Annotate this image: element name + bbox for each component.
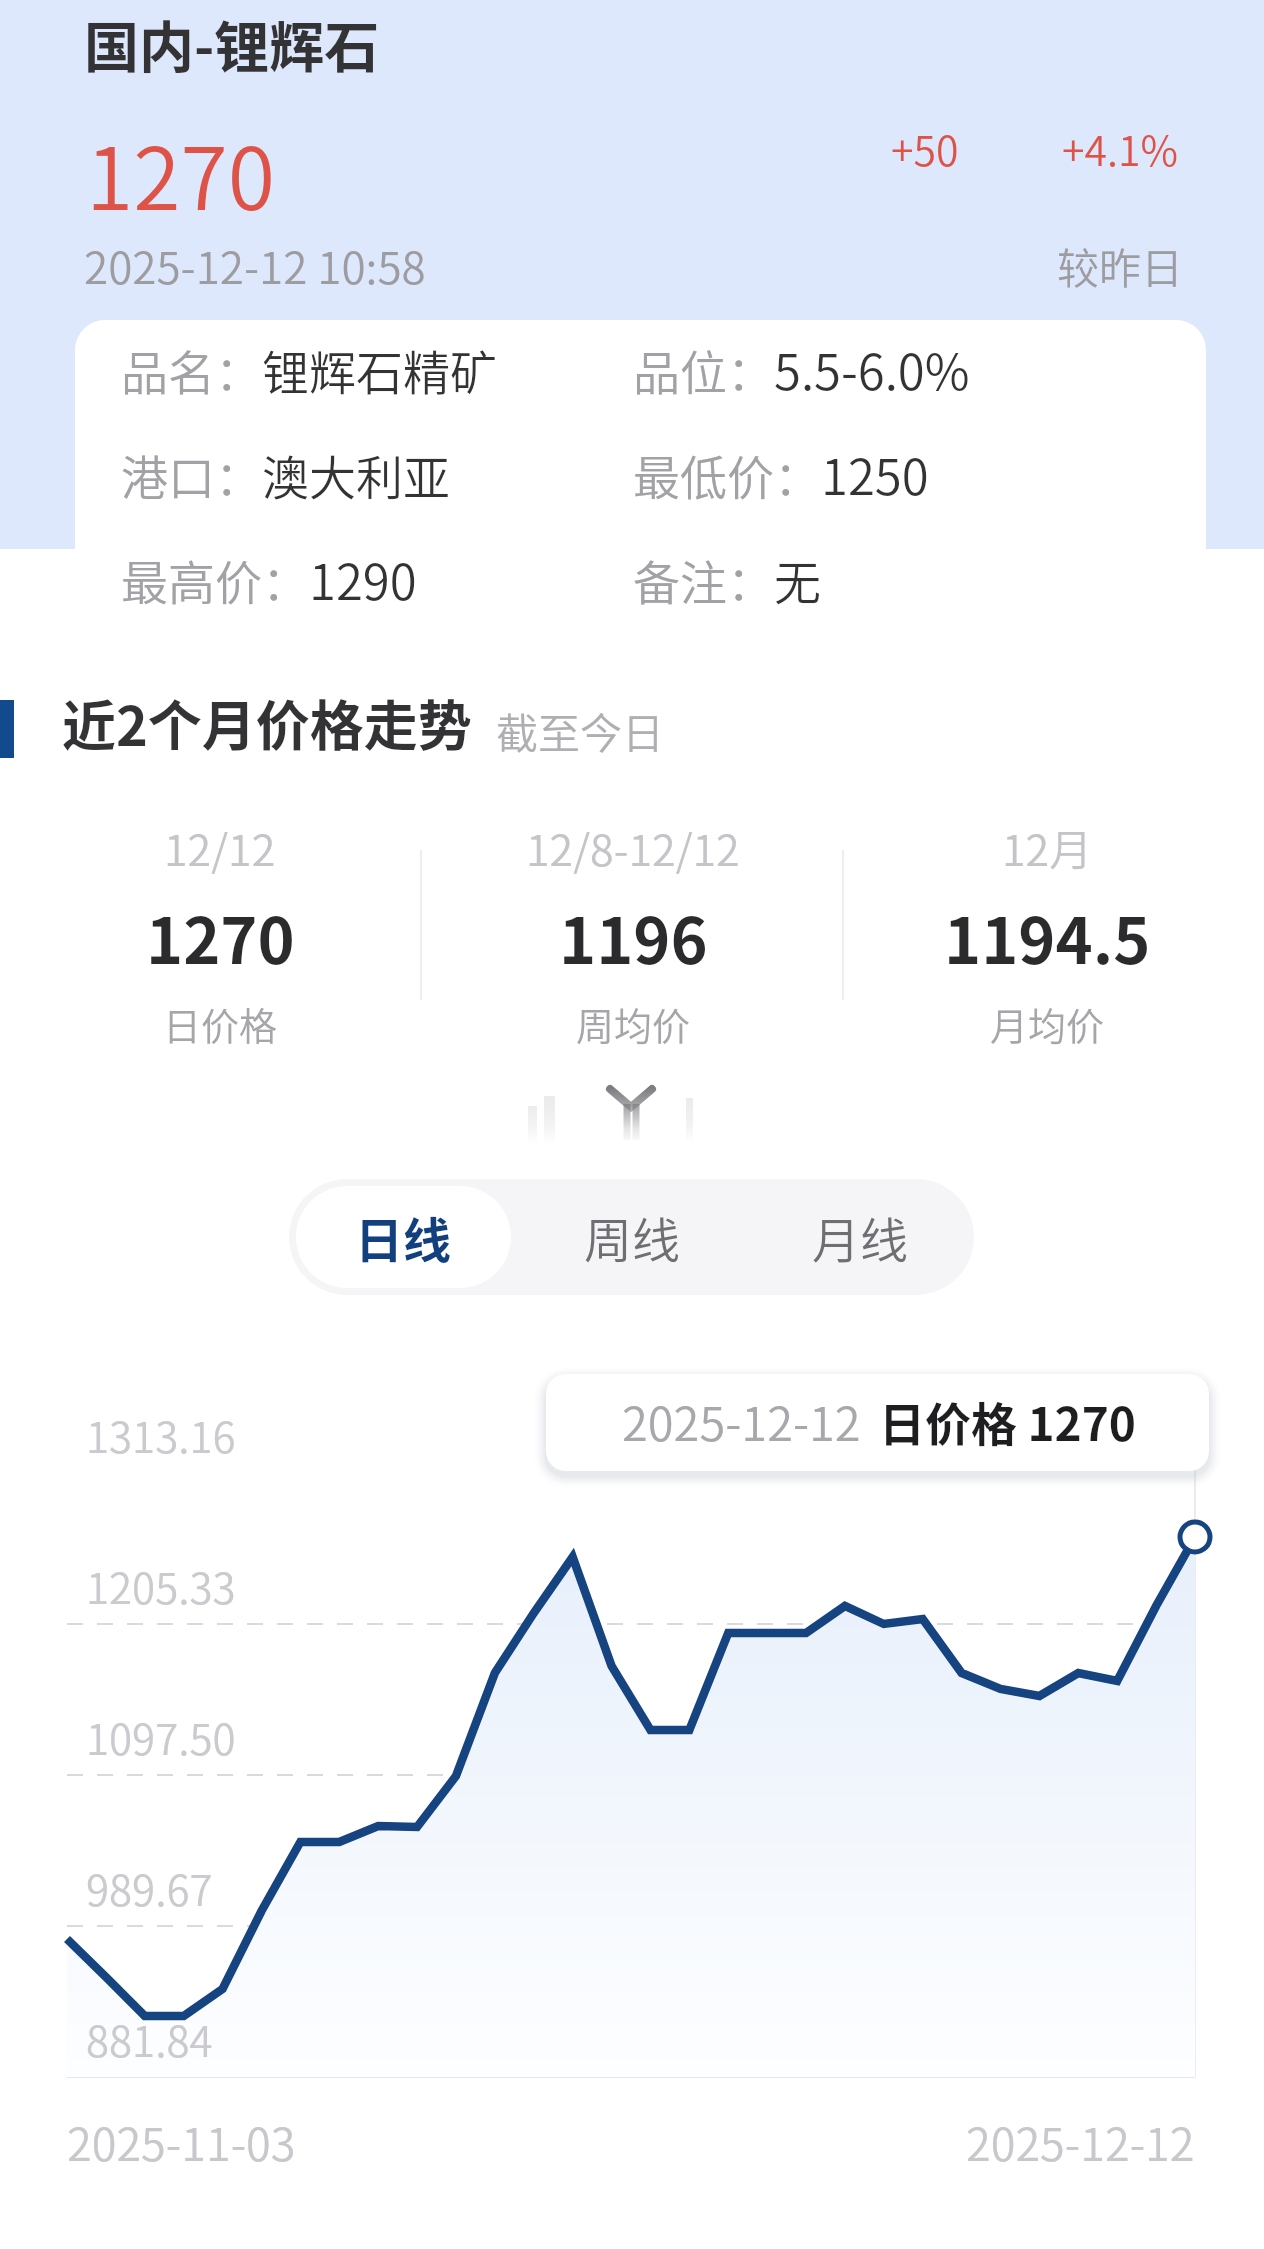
staticText: 2025-12-12 10:58 — [84, 233, 426, 297]
staticText: 日价格 1270 — [879, 1388, 1137, 1455]
staticText: 2025-11-03 — [67, 2109, 296, 2174]
staticText: 1270 — [146, 891, 295, 982]
staticText: 无 — [774, 545, 821, 613]
button[interactable]: 月线 — [746, 1179, 974, 1295]
staticText: 月均价 — [990, 996, 1105, 1051]
staticText: 品位： — [633, 335, 774, 403]
staticText: +4.1% — [1062, 118, 1179, 177]
staticText: 2025-12-12 — [622, 1386, 861, 1454]
staticText: 周线 — [584, 1202, 681, 1272]
staticText: 截至今日 — [496, 700, 665, 761]
staticText: 12/12 — [164, 816, 276, 878]
staticText: 品名： — [121, 335, 262, 403]
button[interactable] — [453, 822, 813, 1067]
staticText: 较昨日 — [1057, 235, 1184, 296]
staticText: 2025-12-12 — [966, 2109, 1195, 2174]
staticText: 989.67 — [86, 1857, 213, 1918]
staticText: 周均价 — [576, 996, 691, 1051]
staticText: 881.84 — [86, 2008, 213, 2069]
staticText: 最低价： — [633, 440, 821, 508]
staticText: 5.5-6.0% — [774, 333, 970, 404]
staticText: 日线 — [355, 1202, 452, 1272]
staticText: 12/8-12/12 — [526, 816, 740, 878]
staticText: 1196 — [559, 891, 708, 982]
staticText: 12月 — [1002, 816, 1093, 878]
staticText: 1097.50 — [86, 1706, 236, 1767]
staticText: 锂辉石精矿 — [262, 335, 497, 403]
staticText: 1290 — [309, 543, 417, 614]
button[interactable]: 周线 — [518, 1179, 746, 1295]
staticText: +50 — [891, 118, 959, 177]
button[interactable]: 日线 — [296, 1186, 511, 1288]
staticText: 国内-锂辉石 — [84, 3, 380, 83]
staticText: 月线 — [812, 1202, 909, 1272]
staticText: 最高价： — [121, 545, 309, 613]
staticText: 近2个月价格走势 — [62, 683, 472, 761]
button[interactable] — [40, 822, 400, 1067]
button[interactable] — [867, 822, 1227, 1067]
staticText: 1270 — [86, 110, 275, 235]
staticText: 1205.33 — [86, 1555, 236, 1616]
staticText: 港口： — [121, 440, 262, 508]
staticText: 1194.5 — [944, 891, 1151, 982]
button[interactable]: Collapse — [500, 1082, 740, 1152]
staticText: 澳大利亚 — [262, 440, 450, 508]
staticText: 备注： — [633, 545, 774, 613]
staticText: 1313.16 — [86, 1404, 236, 1465]
staticText: 1250 — [821, 438, 929, 509]
staticText: 日价格 — [163, 996, 278, 1051]
